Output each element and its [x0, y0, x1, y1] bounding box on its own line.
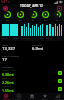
other: Workout icon: [58, 71, 62, 75]
button[interactable]: Outdoor Run: [2, 77, 62, 85]
staticText: 88: [19, 19, 22, 21]
button[interactable]: Steps: [2, 43, 32, 52]
staticText: 432: [14, 37, 18, 40]
staticText: 13,337: [2, 46, 16, 52]
staticText: EXERCISE: [21, 37, 30, 40]
button[interactable]: Outdoor Run: [2, 69, 62, 77]
button[interactable]: Indoor Run: [2, 85, 62, 93]
staticText: 95: [44, 19, 47, 21]
button[interactable]: MOVE: [1, 22, 19, 41]
staticText: 40: [56, 19, 59, 21]
staticText: 2.26mi: [2, 80, 14, 85]
staticText: Fitness+: [15, 98, 22, 100]
staticText: TODAY, APR 12: [20, 4, 43, 8]
staticText: Awards: [41, 98, 48, 100]
staticText: 11: [59, 37, 62, 40]
staticText: Distance: [32, 43, 42, 46]
staticText: 38: [40, 37, 43, 40]
staticText: Summary: [2, 98, 11, 100]
staticText: Workouts: [2, 65, 13, 68]
staticText: Sharing: [28, 98, 35, 100]
button[interactable]: Settings: [56, 5, 62, 11]
button[interactable]: Ring 1: [1, 11, 14, 21]
button[interactable]: Profile: [2, 5, 8, 11]
staticText: STAND: [46, 37, 53, 40]
button[interactable]: Sharing: [25, 93, 38, 100]
staticText: Outdoor Run: [2, 77, 16, 80]
staticText: Trends: [55, 98, 61, 100]
button[interactable]: Summary: [0, 93, 12, 100]
button[interactable]: Ring 4: [39, 11, 51, 21]
button[interactable]: Fitness+: [12, 93, 25, 100]
staticText: Outdoor Run: [2, 69, 16, 72]
staticText: 17: [2, 57, 7, 63]
other: Workout icon: [58, 79, 62, 83]
button[interactable]: Trends: [51, 93, 64, 100]
staticText: 1.55mi: [2, 88, 14, 93]
staticText: MOVE: [2, 37, 8, 40]
button[interactable]: Ring 5: [51, 11, 63, 21]
button[interactable]: Ring 2: [14, 11, 27, 21]
staticText: Flights climbed: [2, 54, 19, 57]
staticText: 61: [32, 19, 35, 21]
staticText: Indoor Run: [2, 85, 14, 88]
staticText: 6.9mi: [32, 46, 44, 52]
button[interactable]: Ring 3: [27, 11, 39, 21]
staticText: 72: [6, 19, 9, 21]
button[interactable]: STAND: [45, 22, 63, 41]
other: Workout icon: [58, 87, 62, 91]
button[interactable]: EXERCISE: [20, 22, 44, 41]
button[interactable]: Awards: [38, 93, 51, 100]
staticText: ACTIVITY: [27, 8, 37, 11]
staticText: 0.38mi: [2, 72, 14, 77]
staticText: 9:41: [1, 0, 7, 4]
button[interactable]: Flights climbed: [2, 54, 62, 63]
button[interactable]: Distance: [32, 43, 62, 52]
staticText: Steps: [2, 43, 9, 46]
